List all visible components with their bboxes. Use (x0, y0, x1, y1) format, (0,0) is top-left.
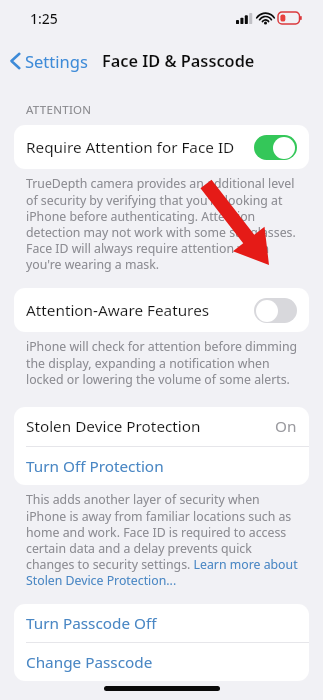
button[interactable]: Turn Off Protection (14, 447, 309, 485)
staticText: 1:25 (30, 9, 58, 28)
staticText: ATTENTION (26, 102, 92, 118)
staticText: Change Passcode (26, 652, 153, 673)
staticText: Settings (25, 50, 88, 72)
staticText: Require Attention for Face ID (26, 137, 254, 158)
staticText: This adds another layer of security when… (26, 491, 303, 588)
button[interactable]: Stolen Device Protection (14, 407, 309, 446)
button[interactable]: Require Attention for Face ID (14, 125, 309, 169)
staticText: Turn Off Protection (26, 456, 164, 477)
staticText: TrueDepth camera provides an additional … (26, 175, 303, 272)
button[interactable]: Settings (6, 45, 92, 77)
staticText: Stolen Device Protection (26, 416, 275, 437)
staticText: Face ID & Passcode (102, 50, 255, 72)
staticText: Turn Passcode Off (26, 613, 157, 634)
button[interactable]: Switch off (254, 298, 297, 323)
button[interactable]: Switch on (254, 135, 297, 160)
button[interactable]: Attention-Aware Features (14, 288, 309, 332)
button[interactable]: Change Passcode (14, 643, 309, 681)
staticText: iPhone will check for attention before d… (26, 338, 303, 387)
staticText: On (275, 416, 297, 437)
button[interactable]: Turn Passcode Off (14, 604, 309, 642)
staticText: Attention-Aware Features (26, 300, 254, 321)
